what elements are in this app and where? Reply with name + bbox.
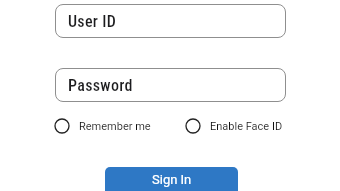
staticText: User ID xyxy=(68,12,117,31)
staticText: Enable Face ID xyxy=(210,120,283,133)
staticText: Password xyxy=(68,76,133,95)
staticText: Sign In xyxy=(152,172,192,187)
button[interactable]: Password xyxy=(55,68,286,102)
button[interactable]: Sign In xyxy=(105,167,238,191)
button[interactable]: User ID xyxy=(55,4,286,38)
button[interactable]: Remember me xyxy=(54,118,151,134)
button[interactable]: Enable Face ID xyxy=(185,118,283,134)
staticText: Remember me xyxy=(79,120,151,133)
